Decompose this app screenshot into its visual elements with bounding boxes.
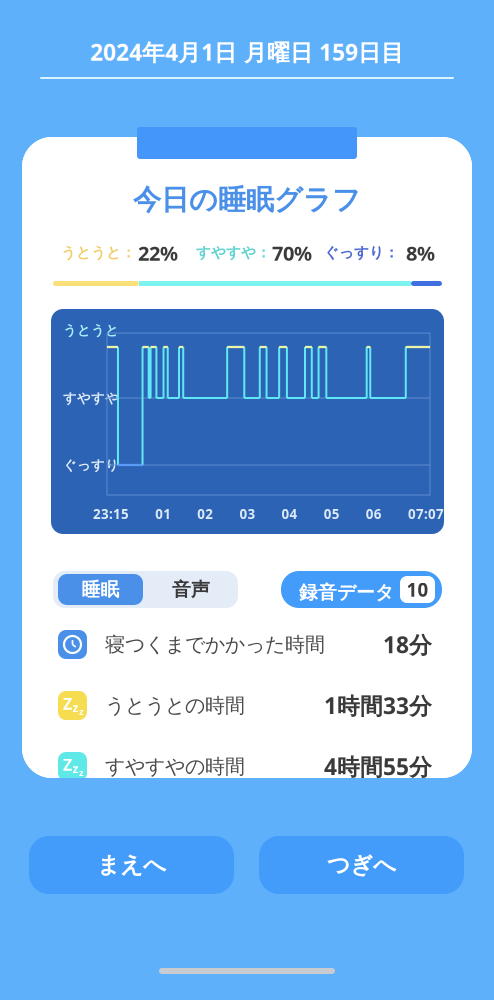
staticText: 2024年4月1日 月曜日 159日目	[90, 37, 404, 67]
staticText: 18分	[383, 629, 432, 659]
staticText: z	[79, 705, 84, 718]
staticText: 寝つくまでかかった時間	[105, 632, 325, 657]
staticText: 04	[282, 505, 298, 523]
staticText: 23:15	[93, 505, 129, 523]
button[interactable]: 音声	[146, 574, 236, 605]
staticText: 06	[366, 505, 382, 523]
staticText: 4時間55分	[324, 751, 432, 781]
button[interactable]: 睡眠	[58, 574, 143, 605]
staticText: つぎへ	[327, 851, 396, 879]
staticText: 22%	[138, 240, 178, 266]
button[interactable]: Z	[58, 736, 432, 797]
staticText: 1時間33分	[324, 690, 432, 720]
staticText: ぐっすり	[63, 457, 119, 473]
staticText: Z	[63, 693, 72, 714]
button[interactable]: 寝つくまでかかった時間	[58, 614, 432, 675]
staticText: 睡眠	[81, 578, 119, 601]
staticText: 70%	[272, 240, 312, 266]
button[interactable]: つぎへ	[259, 836, 464, 894]
button[interactable]: Z	[58, 675, 432, 736]
staticText: 録音データ	[299, 581, 394, 604]
staticText: 07:07	[408, 505, 444, 523]
staticText: うとうと：	[61, 244, 136, 262]
staticText: 8%	[406, 240, 435, 266]
staticText: 03	[239, 505, 255, 523]
staticText: z	[72, 699, 78, 715]
staticText: まえへ	[97, 851, 166, 879]
staticText: z	[79, 766, 84, 779]
button[interactable]: まえへ	[29, 836, 234, 894]
staticText: ぐっすり：	[324, 244, 399, 262]
staticText: すやすや：	[196, 244, 271, 262]
staticText: z	[72, 760, 78, 776]
staticText: 05	[324, 505, 340, 523]
staticText: 02	[197, 505, 213, 523]
staticText: うとうと	[63, 322, 119, 338]
staticText: うとうとの時間	[105, 693, 245, 718]
staticText: Z	[63, 754, 72, 775]
staticText: 10	[406, 577, 428, 602]
staticText: 今日の睡眠グラフ	[133, 183, 361, 217]
staticText: 音声	[172, 578, 210, 601]
staticText: すやすや	[63, 390, 119, 406]
button[interactable]: 録音データ	[281, 571, 442, 608]
staticText: すやすやの時間	[105, 754, 245, 779]
staticText: 01	[155, 505, 171, 523]
